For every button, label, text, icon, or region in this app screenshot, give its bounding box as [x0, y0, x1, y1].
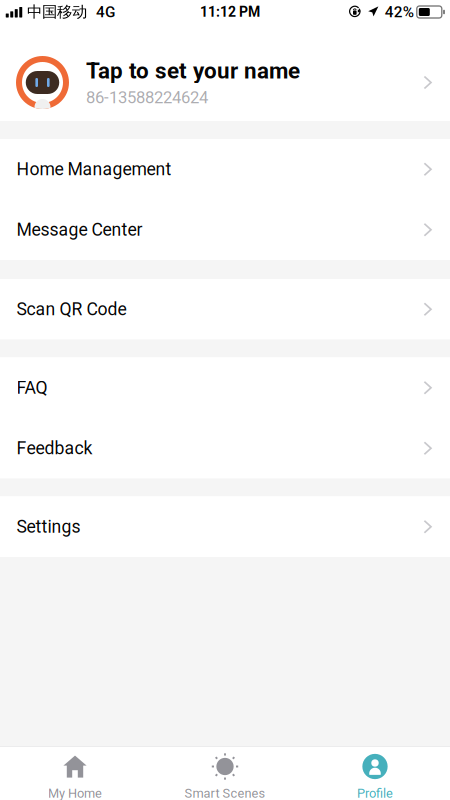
staticText: Message Center: [17, 219, 143, 240]
staticText: 86-13588224624: [86, 88, 208, 107]
staticText: Profile: [357, 786, 393, 800]
button[interactable]: Feedback: [0, 418, 450, 478]
staticText: My Home: [48, 786, 102, 800]
button[interactable]: Message Center: [0, 199, 450, 260]
staticText: 4G: [96, 3, 115, 21]
button[interactable]: Tap to set your name: [0, 54, 450, 121]
staticText: 42%: [385, 3, 414, 21]
staticText: Settings: [17, 516, 81, 537]
button[interactable]: FAQ: [0, 357, 450, 418]
button[interactable]: Settings: [0, 496, 450, 557]
staticText: 11:12 PM: [200, 4, 260, 20]
button[interactable]: Profile: [300, 747, 450, 800]
button[interactable]: Smart Scenes: [150, 747, 300, 800]
staticText: Feedback: [17, 438, 93, 458]
button[interactable]: Scan QR Code: [0, 279, 450, 339]
staticText: Scan QR Code: [17, 299, 127, 319]
staticText: Smart Scenes: [184, 786, 265, 800]
staticText: FAQ: [17, 377, 48, 398]
button[interactable]: Home Management: [0, 139, 450, 199]
staticText: 中国移动: [27, 2, 87, 22]
button[interactable]: My Home: [0, 747, 150, 800]
staticText: Tap to set your name: [86, 58, 300, 84]
staticText: Home Management: [17, 159, 172, 179]
